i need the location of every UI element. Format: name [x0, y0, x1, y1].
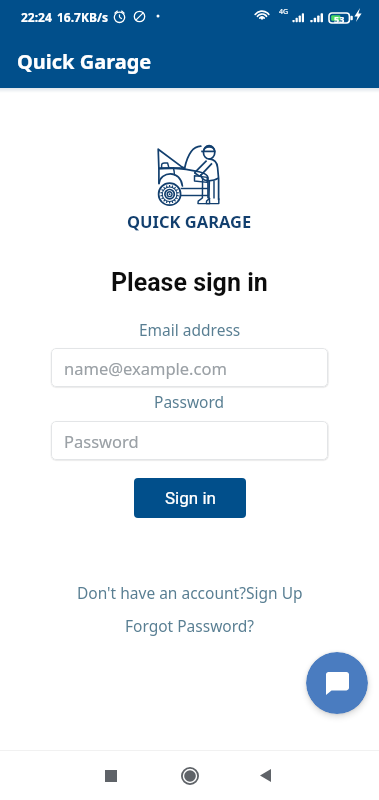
button[interactable]: Recent apps	[87, 752, 134, 799]
button[interactable]: Don't have an account?	[77, 582, 246, 603]
staticText: Password	[64, 430, 139, 452]
button[interactable]: Sign Up	[246, 582, 303, 603]
staticText: QUICK GARAGE	[127, 210, 252, 232]
button[interactable]: Password	[51, 421, 328, 460]
button[interactable]: name@example.com	[51, 348, 328, 387]
staticText: name@example.com	[64, 357, 227, 379]
button[interactable]: Chat	[306, 652, 368, 714]
staticText: Email address	[139, 319, 241, 340]
button[interactable]: Home	[166, 752, 213, 799]
staticText: 4G	[279, 7, 289, 17]
staticText: Password	[154, 391, 225, 412]
staticText: 22:24	[21, 9, 52, 25]
staticText: Please sign in	[111, 268, 268, 297]
button[interactable]: Back	[242, 752, 289, 799]
button[interactable]: Sign in	[134, 478, 246, 518]
staticText: Sign in	[165, 488, 216, 508]
staticText: 53	[334, 13, 345, 25]
button[interactable]: Forgot Password?	[125, 615, 255, 636]
staticText: Quick Garage	[17, 48, 152, 75]
staticText: 16.7KB/s	[57, 9, 108, 25]
